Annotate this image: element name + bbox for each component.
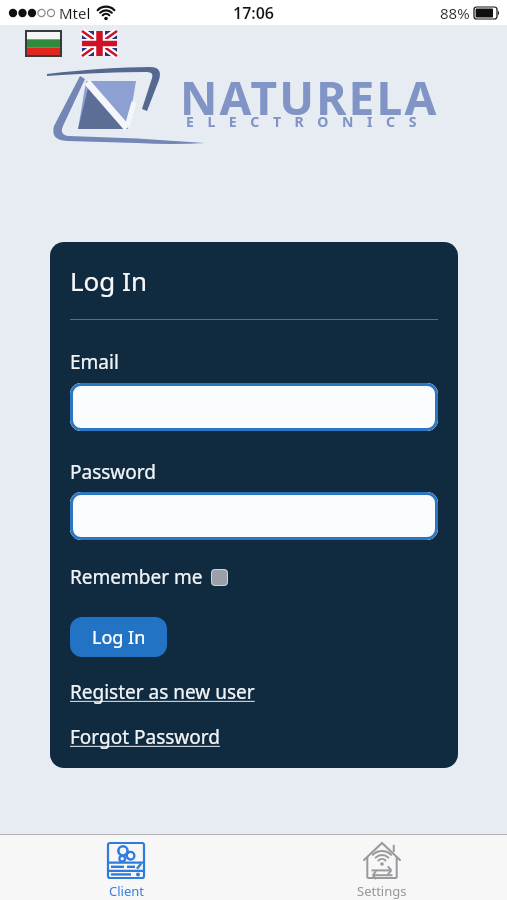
- staticText: 17:06: [233, 2, 275, 24]
- button[interactable]: [70, 383, 438, 431]
- button[interactable]: Settings: [352, 840, 412, 900]
- button[interactable]: [26, 31, 61, 56]
- button[interactable]: [70, 492, 438, 540]
- staticText: 88%: [440, 3, 470, 23]
- staticText: Email: [70, 349, 119, 375]
- staticText: Client: [109, 882, 144, 900]
- staticText: Password: [70, 459, 156, 485]
- button[interactable]: Log In: [70, 617, 167, 657]
- button[interactable]: Remember me: [70, 564, 228, 590]
- staticText: Mtel: [59, 3, 91, 23]
- staticText: Log In: [92, 625, 146, 650]
- button[interactable]: Client: [98, 842, 154, 900]
- button[interactable]: Forgot Password: [70, 724, 220, 750]
- staticText: NATURELA: [180, 66, 439, 129]
- button[interactable]: [82, 31, 117, 56]
- button[interactable]: Register as new user: [70, 679, 255, 705]
- staticText: Log In: [70, 263, 147, 298]
- staticText: ELECTRONICS: [186, 112, 430, 131]
- staticText: Remember me: [70, 564, 203, 590]
- staticText: Settings: [357, 882, 407, 900]
